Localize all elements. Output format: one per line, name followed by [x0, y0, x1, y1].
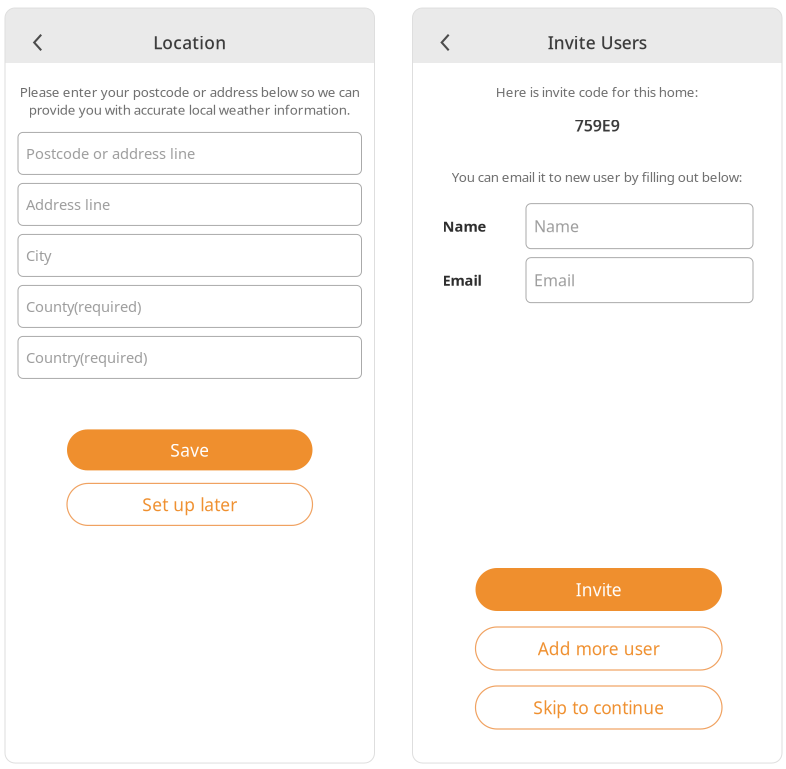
staticText: Add more user	[538, 637, 660, 660]
staticText: Please enter your postcode or address be…	[20, 83, 360, 101]
staticText: Skip to continue	[533, 696, 664, 719]
staticText: Name	[442, 216, 486, 236]
button[interactable]: County(required)	[18, 285, 361, 327]
staticText: Name	[534, 215, 579, 237]
staticText: Save	[170, 438, 209, 461]
staticText: Here is invite code for this home:	[496, 83, 699, 101]
staticText: Email	[442, 270, 481, 290]
button[interactable]: Address line	[18, 183, 361, 225]
staticText: Location	[153, 31, 226, 54]
button[interactable]: Save	[67, 429, 312, 470]
button[interactable]: Skip to continue	[475, 686, 722, 729]
button[interactable]: Invite	[475, 568, 722, 611]
button[interactable]: Back	[5, 22, 71, 63]
staticText: 759E9	[575, 115, 620, 136]
staticText: Address line	[26, 195, 110, 214]
staticText: You can email it to new user by filling …	[452, 168, 743, 186]
staticText: Invite Users	[548, 31, 647, 54]
button[interactable]: Back	[412, 22, 478, 63]
staticText: County(required)	[26, 297, 141, 316]
button[interactable]: Postcode or address line	[18, 132, 361, 174]
staticText: Email	[534, 269, 575, 291]
staticText: City	[26, 246, 51, 265]
button[interactable]: City	[18, 234, 361, 276]
staticText: provide you with accurate local weather …	[29, 101, 351, 118]
button[interactable]: Name	[526, 204, 753, 249]
button[interactable]: Email	[526, 258, 753, 303]
button[interactable]: Add more user	[475, 627, 722, 670]
button[interactable]: Set up later	[67, 483, 312, 525]
staticText: Postcode or address line	[26, 144, 195, 163]
button[interactable]: Country(required)	[18, 336, 361, 378]
staticText: Invite	[576, 578, 622, 601]
staticText: Set up later	[142, 493, 237, 516]
staticText: Country(required)	[26, 348, 147, 367]
